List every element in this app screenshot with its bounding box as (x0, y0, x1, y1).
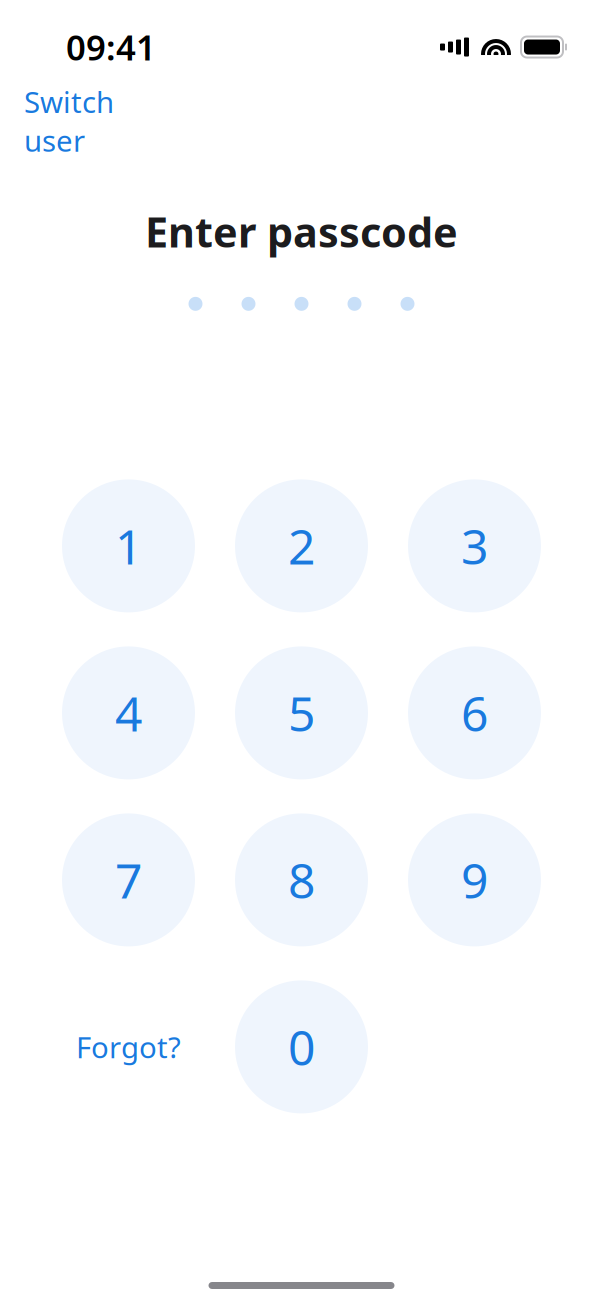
button[interactable]: Forgot? (62, 980, 195, 1113)
staticText: 6 (461, 681, 488, 745)
button[interactable]: 8 (235, 813, 368, 946)
button[interactable]: 4 (62, 646, 195, 779)
staticText: 1 (115, 514, 142, 578)
staticText: 5 (288, 681, 315, 745)
staticText: 0 (288, 1015, 315, 1079)
staticText: Forgot? (76, 1027, 181, 1066)
button[interactable]: 0 (235, 980, 368, 1113)
button[interactable]: 6 (408, 646, 541, 779)
staticText: Switch user (24, 82, 114, 160)
button[interactable]: 5 (235, 646, 368, 779)
button[interactable]: 2 (235, 479, 368, 612)
staticText: 4 (115, 681, 142, 745)
staticText: Enter passcode (145, 204, 458, 259)
button[interactable]: 3 (408, 479, 541, 612)
staticText: 7 (115, 848, 142, 912)
button[interactable]: 9 (408, 813, 541, 946)
staticText: 2 (288, 514, 315, 578)
staticText: 09:41 (66, 24, 156, 70)
button[interactable]: 7 (62, 813, 195, 946)
staticText: 3 (461, 514, 488, 578)
button[interactable]: 1 (62, 479, 195, 612)
staticText: 9 (461, 848, 488, 912)
staticText: 8 (288, 848, 315, 912)
button[interactable]: Switch user (24, 82, 114, 160)
